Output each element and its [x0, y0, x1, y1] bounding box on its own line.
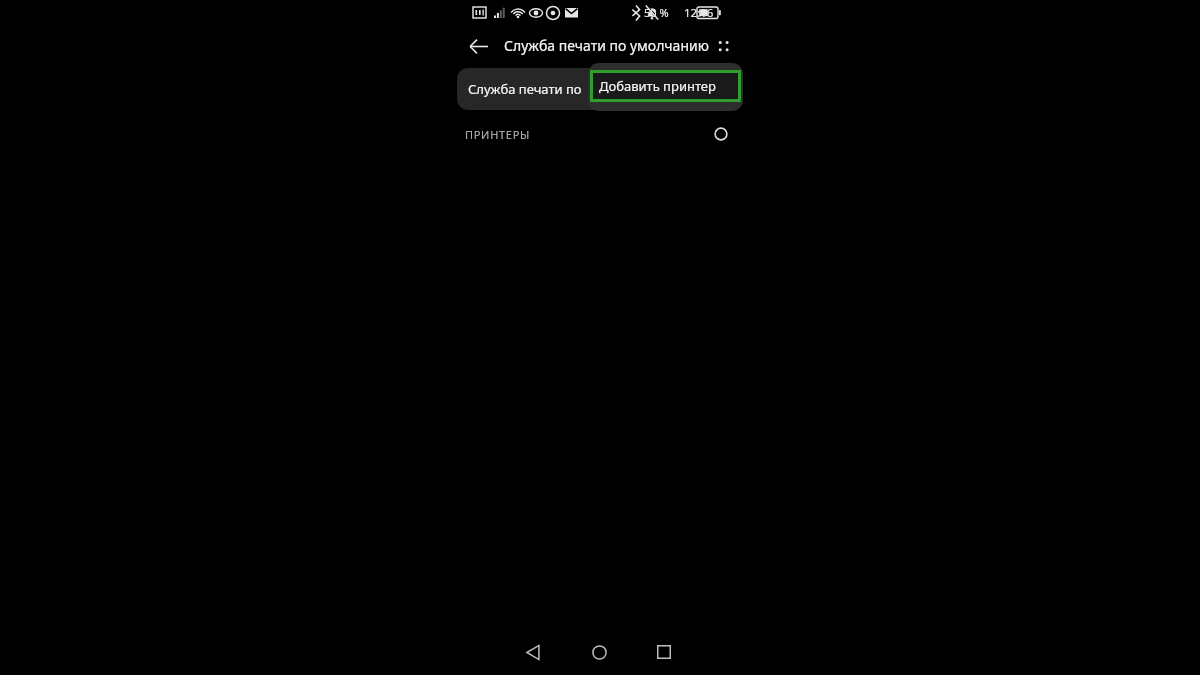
staticText: 12:16	[684, 5, 714, 21]
staticText: Служба печати по умолчанию	[504, 36, 709, 55]
button[interactable]: Главный экран	[579, 632, 619, 672]
button[interactable]: Служба печати по	[457, 68, 743, 110]
button[interactable]: Дополнительно	[706, 29, 740, 63]
staticText: ПРИНТЕРЫ	[465, 127, 531, 142]
staticText: Добавить принтер	[599, 77, 716, 95]
button[interactable]: Назад	[513, 632, 553, 672]
button[interactable]: Последние приложения	[644, 632, 684, 672]
button[interactable]: Назад	[461, 29, 495, 63]
staticText: 50 %	[644, 5, 669, 20]
button[interactable]: Добавить принтер	[593, 73, 738, 99]
staticText: Служба печати по	[468, 80, 582, 98]
